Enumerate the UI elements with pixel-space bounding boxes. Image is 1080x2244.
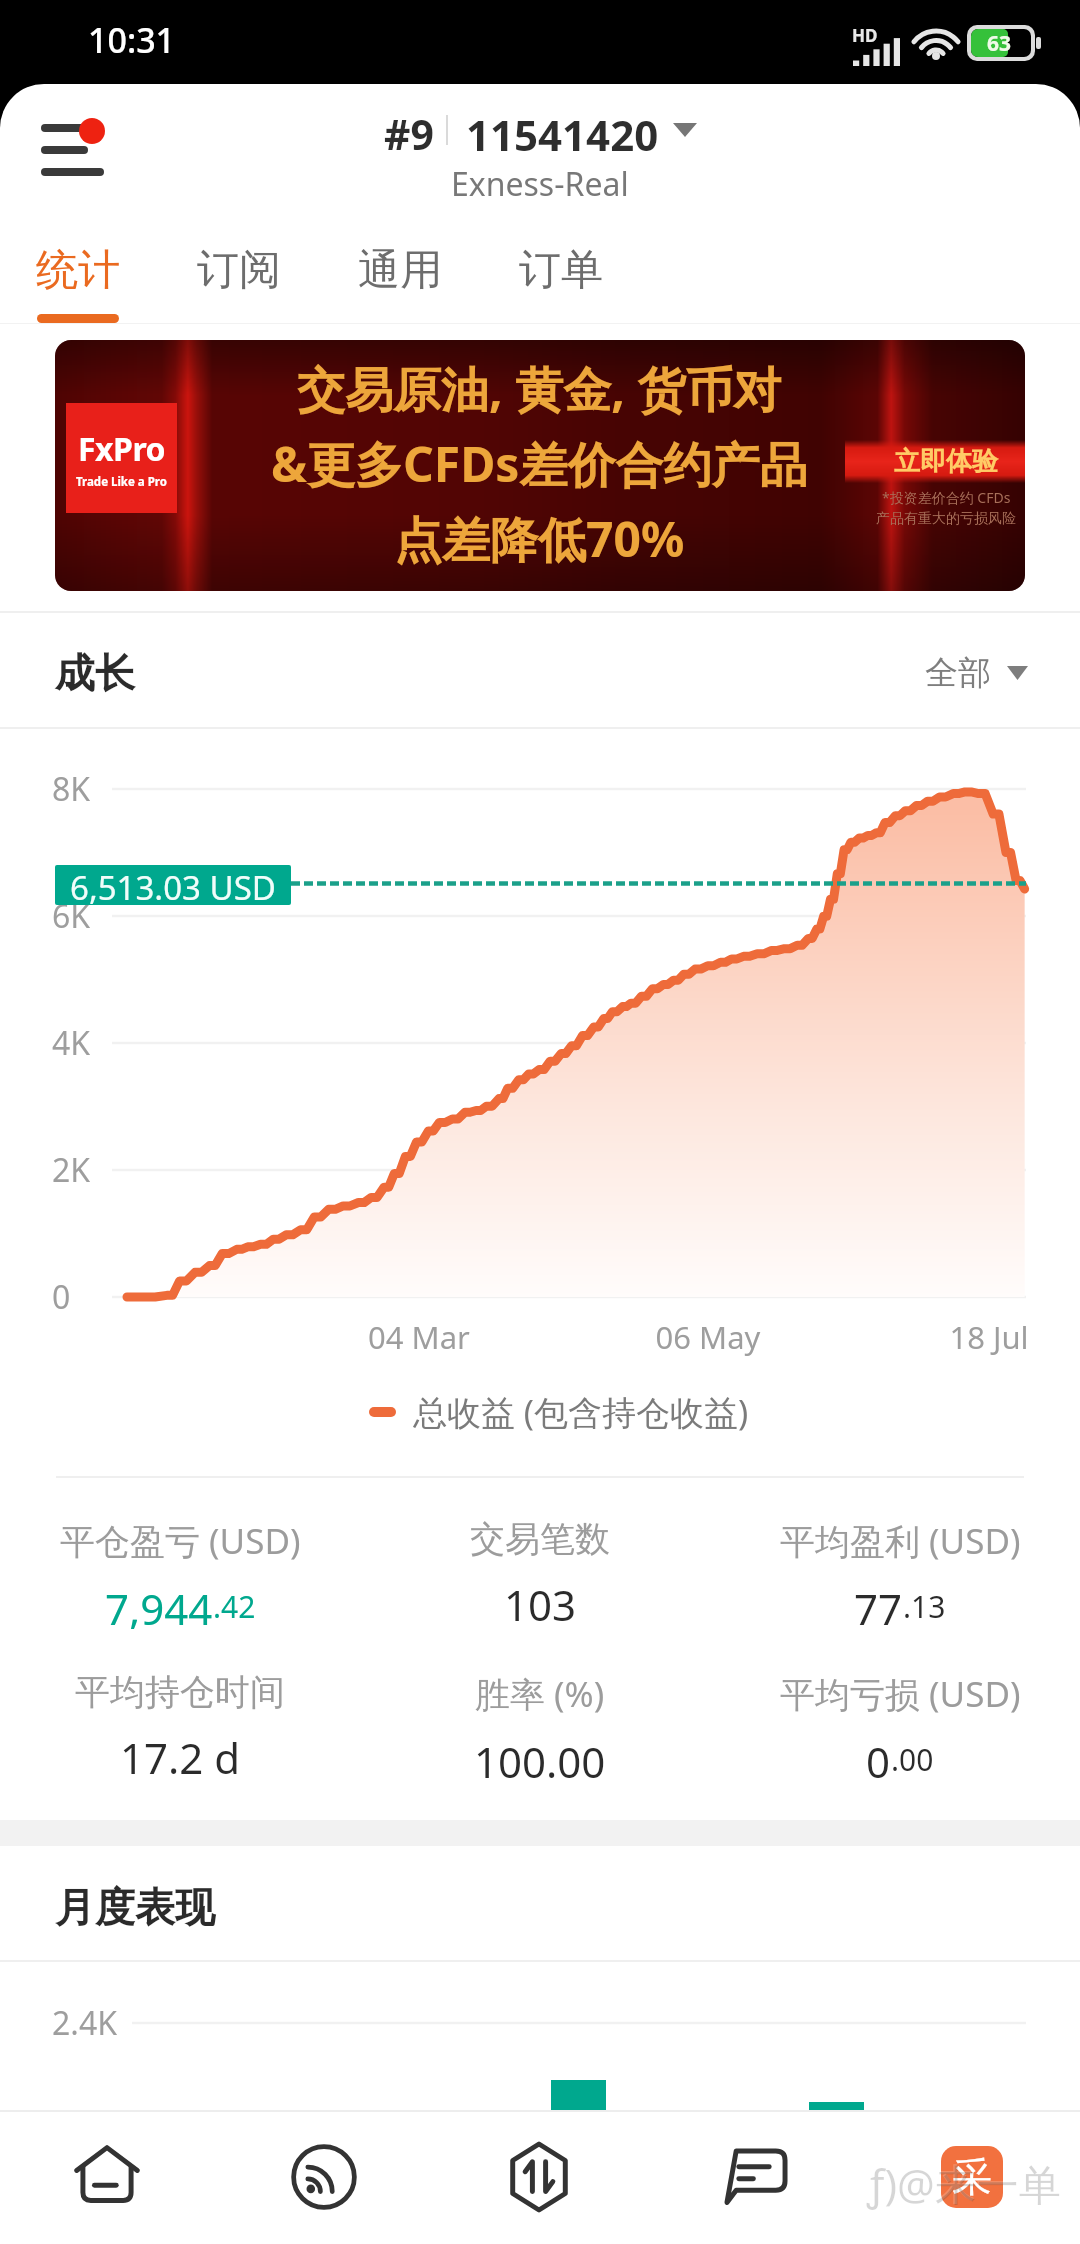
staticText: 103 [504,1576,577,1629]
button[interactable]: 胜率 (%) [360,1631,720,1782]
staticText: 月度表现 [55,1882,215,1932]
staticText: 4K [52,1021,124,1065]
button[interactable]: 平均持仓时间 [0,1631,360,1782]
staticText: 63 [987,29,1012,57]
staticText: 立即体验 [894,445,998,478]
button[interactable]: 通用 [341,230,459,324]
staticText: 8K [52,767,124,811]
staticText: Exness-Real [451,162,629,206]
staticText: 交易原油, 黄金, 货币对 [297,356,782,422]
button[interactable]: 交易笔数 [360,1478,720,1629]
staticText: 7,944 [105,1580,213,1629]
staticText: 成长 [55,648,135,698]
button[interactable]: Trade [485,2122,593,2232]
staticText: 总收益 (包含持仓收益) [413,1389,749,1435]
staticText: .42 [213,1586,256,1627]
button[interactable]: Account [918,2122,1026,2232]
button[interactable]: Chat [702,2122,810,2232]
staticText: .00 [891,1739,934,1780]
staticText: 11541420 [466,106,659,154]
staticText: FxPro [78,427,166,471]
button[interactable]: 平均盈利 (USD) [720,1478,1080,1629]
staticText: 0 [52,1275,124,1319]
staticText: 胜率 (%) [475,1670,605,1718]
staticText: 平均持仓时间 [75,1670,285,1714]
button[interactable]: Menu [30,98,122,188]
button[interactable]: 订单 [502,230,620,324]
staticText: 平仓盈亏 (USD) [60,1517,301,1565]
staticText: 订单 [519,244,603,297]
button[interactable]: 平均亏损 (USD) [720,1631,1080,1782]
staticText: 6,513.03 USD [70,865,276,905]
staticText: 10:31 [88,17,176,63]
staticText: 平均亏损 (USD) [780,1670,1021,1718]
button[interactable]: 订阅 [180,230,298,324]
staticText: 18 Jul [885,1316,1080,1358]
staticText: .13 [903,1586,946,1627]
staticText: ƒ)@来一单 [867,2155,1061,2212]
staticText: Trade Like a Pro [76,474,167,490]
staticText: 采 [952,2152,992,2202]
staticText: &更多CFDs差价合约产品 [271,431,808,497]
staticText: 点差降低70% [394,506,685,572]
staticText: 统计 [36,244,120,297]
staticText: 2K [52,1148,124,1192]
staticText: 2.4K [52,2001,172,2045]
staticText: 100.00 [474,1733,606,1782]
button[interactable]: Home [53,2122,161,2232]
staticText: 04 Mar [315,1316,523,1358]
staticText: 通用 [358,244,442,297]
staticText: 06 May [604,1316,812,1358]
staticText: 平均盈利 (USD) [780,1517,1021,1565]
staticText: 订阅 [197,244,281,297]
staticText: 全部 [925,652,991,694]
button[interactable]: FxPro [55,340,1025,591]
button[interactable]: 全部 [925,652,1028,694]
staticText: HD [852,24,878,47]
button[interactable]: 平仓盈亏 (USD) [0,1478,360,1629]
staticText: ƒ)@来一单 [866,2154,1060,2211]
staticText: 77 [854,1580,903,1629]
button[interactable]: Signals [270,2122,378,2232]
button[interactable]: 统计 [19,230,137,324]
staticText: 交易笔数 [470,1517,610,1561]
staticText: 产品有重大的亏损风险 [876,510,1016,528]
staticText: 17.2 d [120,1729,241,1782]
staticText: #9 [384,106,434,154]
staticText: *投资差价合约 CFDs [882,488,1011,507]
staticText: 0 [866,1733,891,1782]
staticText: 6K [52,894,124,938]
